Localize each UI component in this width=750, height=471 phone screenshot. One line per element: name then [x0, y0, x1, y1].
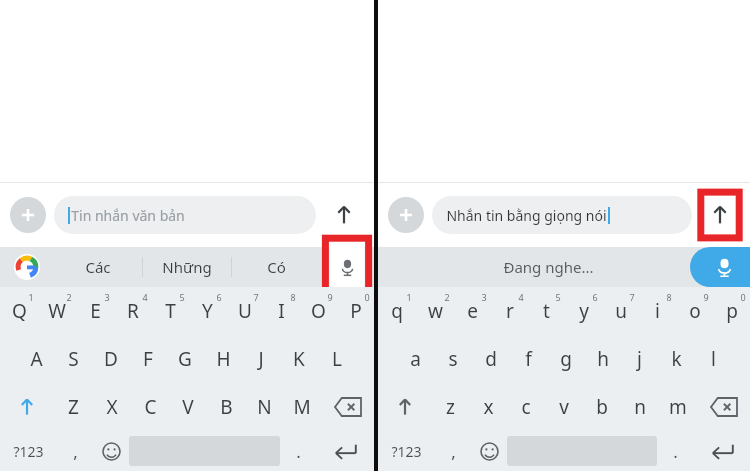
button[interactable]: Emoji — [93, 431, 129, 471]
button[interactable]: Shift — [378, 383, 431, 431]
button[interactable]: q — [378, 287, 416, 335]
button[interactable]: , — [435, 431, 471, 471]
button[interactable]: l — [695, 335, 732, 383]
staticText: C — [144, 394, 157, 420]
staticText: m — [669, 394, 687, 420]
button[interactable]: V — [169, 383, 207, 431]
staticText: . — [296, 440, 301, 463]
button[interactable]: Tin nhắn văn bản — [54, 196, 316, 234]
button[interactable]: s — [434, 335, 472, 383]
button[interactable]: T — [152, 287, 189, 335]
button[interactable]: J — [242, 335, 280, 383]
button[interactable]: W — [38, 287, 76, 335]
button[interactable]: . — [280, 431, 316, 471]
button[interactable]: , — [57, 431, 93, 471]
button[interactable]: A — [18, 335, 55, 383]
button[interactable]: Google — [0, 247, 54, 287]
button[interactable]: . — [657, 431, 693, 471]
staticText: v — [559, 394, 569, 420]
button[interactable]: Các — [54, 247, 142, 287]
button[interactable]: u — [602, 287, 639, 335]
button[interactable]: C — [131, 383, 169, 431]
button[interactable]: y — [565, 287, 602, 335]
button[interactable]: t — [528, 287, 565, 335]
button[interactable]: Q — [0, 287, 38, 335]
staticText: 2 — [444, 291, 450, 303]
button[interactable]: Có — [232, 247, 320, 287]
staticText: k — [671, 346, 682, 372]
button[interactable]: Enter — [316, 431, 374, 471]
button[interactable]: I — [263, 287, 300, 335]
button[interactable]: g — [547, 335, 584, 383]
button[interactable]: Shift — [0, 383, 54, 431]
staticText: V — [182, 394, 194, 420]
staticText: S — [68, 346, 79, 372]
button[interactable]: p — [713, 287, 750, 335]
button[interactable]: X — [93, 383, 131, 431]
button[interactable]: L — [318, 335, 356, 383]
button[interactable]: Attach — [10, 197, 46, 233]
button[interactable]: U — [226, 287, 263, 335]
button[interactable]: Y — [189, 287, 226, 335]
staticText: 6 — [216, 291, 222, 303]
staticText: 7 — [629, 291, 635, 303]
button[interactable]: h — [584, 335, 621, 383]
staticText: 9 — [327, 291, 333, 303]
staticText: w — [428, 298, 443, 324]
button[interactable]: e — [454, 287, 491, 335]
button[interactable]: P — [337, 287, 374, 335]
button[interactable]: E — [76, 287, 114, 335]
button[interactable]: w — [416, 287, 454, 335]
button[interactable]: Voice input — [332, 252, 362, 282]
button[interactable]: Voice input — [690, 247, 750, 287]
button[interactable]: Emoji — [471, 431, 507, 471]
button[interactable]: Backspace — [321, 383, 374, 431]
button[interactable]: K — [280, 335, 318, 383]
staticText: 2 — [66, 291, 72, 303]
button[interactable]: k — [658, 335, 695, 383]
button[interactable]: N — [245, 383, 283, 431]
button[interactable]: S — [55, 335, 92, 383]
staticText: t — [543, 298, 550, 324]
button[interactable]: d — [472, 335, 510, 383]
button[interactable]: G — [166, 335, 204, 383]
button[interactable]: O — [300, 287, 337, 335]
staticText: W — [48, 298, 66, 324]
button[interactable]: m — [659, 383, 697, 431]
button[interactable]: n — [621, 383, 659, 431]
button[interactable]: r — [491, 287, 528, 335]
button[interactable]: R — [114, 287, 152, 335]
button[interactable]: ?123 — [378, 431, 435, 471]
staticText: T — [165, 298, 176, 324]
button[interactable]: v — [545, 383, 583, 431]
button[interactable]: Attach — [388, 197, 424, 233]
button[interactable]: ?123 — [0, 431, 57, 471]
button[interactable]: Send — [327, 198, 361, 232]
button[interactable]: D — [92, 335, 129, 383]
staticText: 1 — [28, 291, 34, 303]
button[interactable]: Enter — [693, 431, 750, 471]
button[interactable]: j — [621, 335, 658, 383]
button[interactable]: f — [510, 335, 547, 383]
button[interactable]: a — [396, 335, 434, 383]
staticText: e — [467, 298, 478, 324]
button[interactable]: F — [129, 335, 166, 383]
staticText: K — [293, 346, 305, 372]
button[interactable]: Backspace — [697, 383, 750, 431]
button[interactable]: Nhắn tin bằng giọng nói — [432, 196, 692, 234]
button[interactable]: z — [431, 383, 469, 431]
button[interactable]: x — [469, 383, 507, 431]
button[interactable]: M — [283, 383, 321, 431]
button[interactable]: H — [204, 335, 242, 383]
button[interactable]: Z — [54, 383, 93, 431]
button[interactable]: B — [207, 383, 245, 431]
button[interactable]: c — [507, 383, 545, 431]
button[interactable]: o — [676, 287, 713, 335]
button[interactable]: i — [639, 287, 676, 335]
button[interactable]: Send — [703, 198, 737, 232]
staticText: P — [350, 298, 362, 324]
button[interactable]: Những — [143, 247, 231, 287]
button[interactable]: b — [583, 383, 621, 431]
